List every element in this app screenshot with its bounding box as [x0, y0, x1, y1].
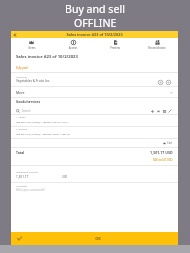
button[interactable]: Reconciliation	[136, 38, 178, 49]
staticText: Customer	[16, 75, 28, 78]
staticText: Cart	[167, 141, 173, 145]
staticText: Settlement amount	[16, 170, 38, 173]
staticText: Total	[16, 150, 25, 155]
staticText: USD	[62, 175, 68, 179]
staticText: Vegetables & Fruits Inc.	[16, 79, 51, 83]
button[interactable]: Back	[11, 31, 18, 38]
staticText: Buy and sell	[65, 2, 125, 16]
button[interactable]: OK	[11, 232, 178, 245]
staticText: More	[16, 90, 25, 95]
staticText: 2. Oranges	[16, 128, 28, 131]
staticText: OFFLINE	[74, 16, 117, 30]
button[interactable]: Items	[11, 38, 52, 49]
staticText: OK	[95, 236, 101, 241]
staticText: Goods/services	[16, 100, 41, 104]
staticText: TAX incl 47 USD	[153, 158, 173, 162]
button[interactable]: Add	[149, 108, 155, 114]
staticText: Comment	[16, 184, 28, 187]
button[interactable]: Accept payment	[52, 38, 94, 49]
staticText: 1. Apples	[16, 116, 26, 119]
staticText: 1,301.17	[16, 175, 29, 179]
staticText: Sales invoice #23 of 10/2/2023	[16, 54, 78, 60]
staticText: 300 kg x 3.2 (-5.00%) = Tax excl. 35.87 …	[16, 132, 70, 135]
staticText: Search	[22, 109, 31, 113]
staticText: Reconciliation	[148, 46, 166, 49]
button[interactable]: Info	[164, 78, 172, 86]
button[interactable]: Edit	[167, 108, 173, 114]
staticText: Fully paid	[16, 66, 28, 70]
button[interactable]: More	[11, 89, 178, 96]
staticText: Sales invoice #23 of 10/2/2023	[66, 32, 123, 37]
staticText: Items	[28, 46, 36, 49]
button[interactable]: Call	[156, 78, 164, 86]
staticText: Write your comment(s)	[16, 188, 45, 192]
staticText: 1,301.17 USD	[150, 150, 173, 155]
button[interactable]: Cart	[155, 108, 161, 114]
staticText: Accept payment	[67, 46, 79, 49]
button[interactable]: Scan	[161, 108, 167, 114]
staticText: Preview	[110, 46, 120, 49]
button[interactable]: Preview	[94, 38, 136, 49]
staticText: 300 kg x 2.5 (-0.00%) = Tax excl. 29.10 …	[16, 120, 69, 123]
